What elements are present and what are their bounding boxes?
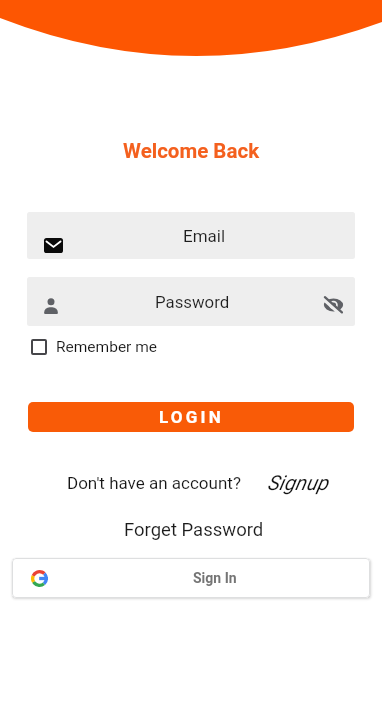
staticText: Email xyxy=(183,226,226,246)
button[interactable] xyxy=(323,295,344,315)
button[interactable]: Remember me xyxy=(31,338,158,356)
staticText: Sign In xyxy=(193,570,237,586)
staticText: Don't have an account? xyxy=(67,473,241,493)
staticText: Remember me xyxy=(56,338,158,356)
button[interactable]: Password xyxy=(27,277,355,326)
button[interactable]: Forget Password xyxy=(124,519,264,541)
button[interactable]: Don't have an account? xyxy=(67,471,328,495)
staticText: Password xyxy=(155,292,230,312)
staticText: Signup xyxy=(267,471,328,495)
staticText: LOGIN xyxy=(159,407,224,427)
staticText: Welcome Back xyxy=(123,139,260,163)
button[interactable]: Sign In xyxy=(12,558,370,598)
button[interactable]: Email xyxy=(27,212,355,259)
button[interactable]: LOGIN xyxy=(28,402,354,432)
